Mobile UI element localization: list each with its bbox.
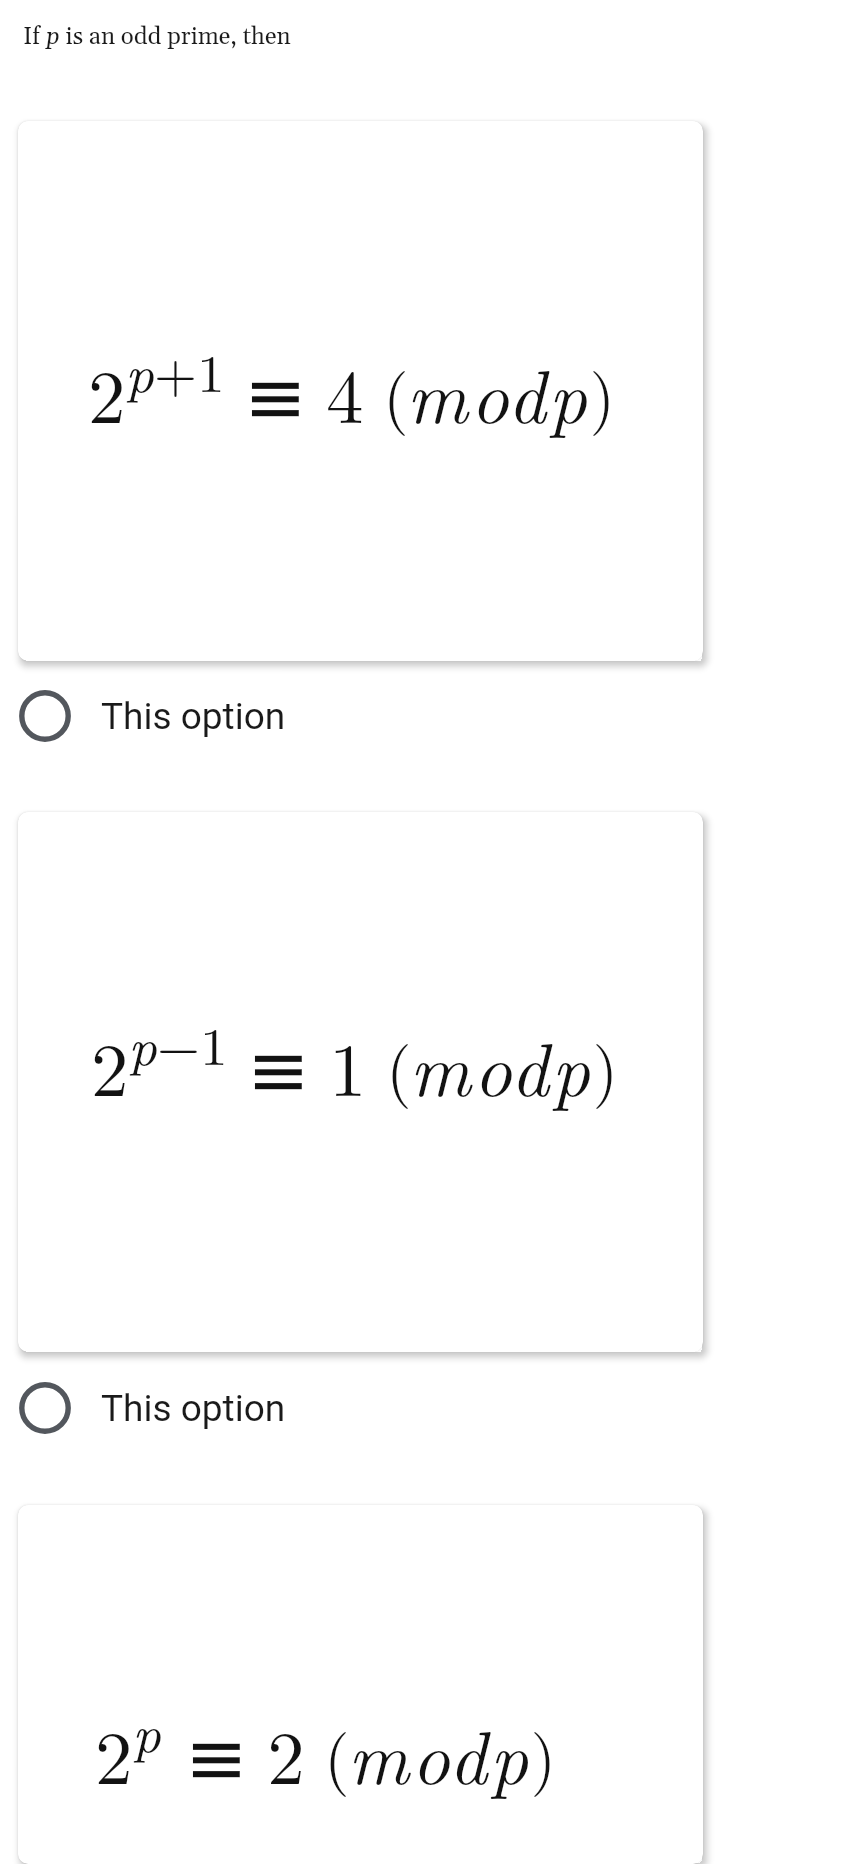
- staticText: 2p ≡ 2 (modp): [95, 1694, 557, 1806]
- button[interactable]: 2p ≡ 2 (modp): [18, 1505, 703, 1864]
- staticText: This option: [101, 695, 286, 738]
- staticText: 2p−1 ≡ 1 (modp): [91, 1006, 619, 1118]
- button[interactable]: 2p+1 ≡ 4 (modp): [18, 121, 703, 661]
- other: Select this option: [19, 690, 71, 742]
- button[interactable]: Select this option: [0, 1382, 851, 1434]
- other: Select this option: [19, 1382, 71, 1434]
- button[interactable]: 2p−1 ≡ 1 (modp): [18, 812, 703, 1352]
- staticText: This option: [101, 1387, 286, 1430]
- button[interactable]: Select this option: [0, 690, 851, 742]
- staticText: 2p+1 ≡ 4 (modp): [88, 333, 616, 445]
- staticText: If p is an odd prime, then: [23, 22, 291, 52]
